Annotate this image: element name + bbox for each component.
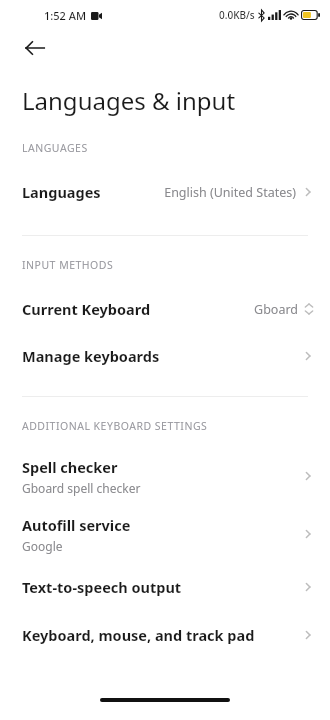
- staticText: Keyboard, mouse, and track pad: [22, 625, 255, 645]
- staticText: Manage keyboards: [22, 346, 160, 366]
- staticText: Google: [22, 538, 63, 554]
- staticText: Spell checker: [22, 457, 118, 477]
- button[interactable]: Spell checker: [0, 447, 330, 505]
- staticText: Text-to-speech output: [22, 577, 182, 597]
- staticText: ADDITIONAL KEYBOARD SETTINGS: [22, 419, 208, 433]
- staticText: Current Keyboard: [22, 299, 151, 319]
- button[interactable]: Text-to-speech output: [0, 563, 330, 611]
- button[interactable]: Manage keyboards: [0, 332, 330, 380]
- staticText: Gboard: [254, 301, 298, 318]
- staticText: Autofill service: [22, 515, 131, 535]
- button[interactable]: Back: [14, 30, 56, 66]
- button[interactable]: Keyboard, mouse, and track pad: [0, 611, 330, 659]
- staticText: Gboard spell checker: [22, 480, 141, 496]
- staticText: Languages: [22, 182, 101, 202]
- staticText: INPUT METHODS: [22, 258, 114, 272]
- staticText: LANGUAGES: [22, 141, 88, 155]
- staticText: 1:52 AM: [44, 8, 87, 23]
- staticText: Languages & input: [22, 84, 236, 117]
- button[interactable]: Autofill service: [0, 505, 330, 563]
- staticText: 0.0KB/s: [219, 8, 255, 22]
- button[interactable]: Current Keyboard: [0, 286, 330, 332]
- staticText: English (United States): [164, 184, 296, 201]
- button[interactable]: Languages: [0, 169, 330, 215]
